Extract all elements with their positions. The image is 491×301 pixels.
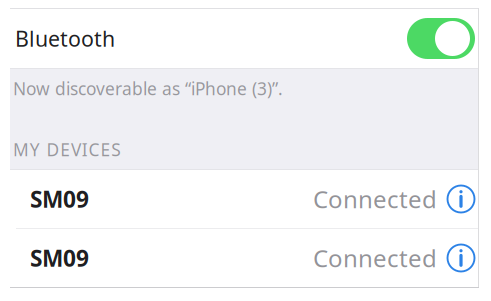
button[interactable]: SM09 <box>10 229 479 287</box>
button[interactable]: More Info about SM09 <box>437 244 475 272</box>
staticText: Connected <box>313 242 437 274</box>
staticText: Connected <box>313 183 437 215</box>
staticText: SM09 <box>30 184 89 214</box>
staticText: Bluetooth <box>15 24 115 53</box>
staticText: MY DEVICES <box>13 138 121 161</box>
button[interactable]: More Info about SM09 <box>437 185 475 213</box>
staticText: Now discoverable as “iPhone (3)”. <box>13 77 283 100</box>
button[interactable]: Bluetooth <box>10 9 479 68</box>
button[interactable]: SM09 <box>10 170 479 228</box>
staticText: SM09 <box>30 243 89 273</box>
